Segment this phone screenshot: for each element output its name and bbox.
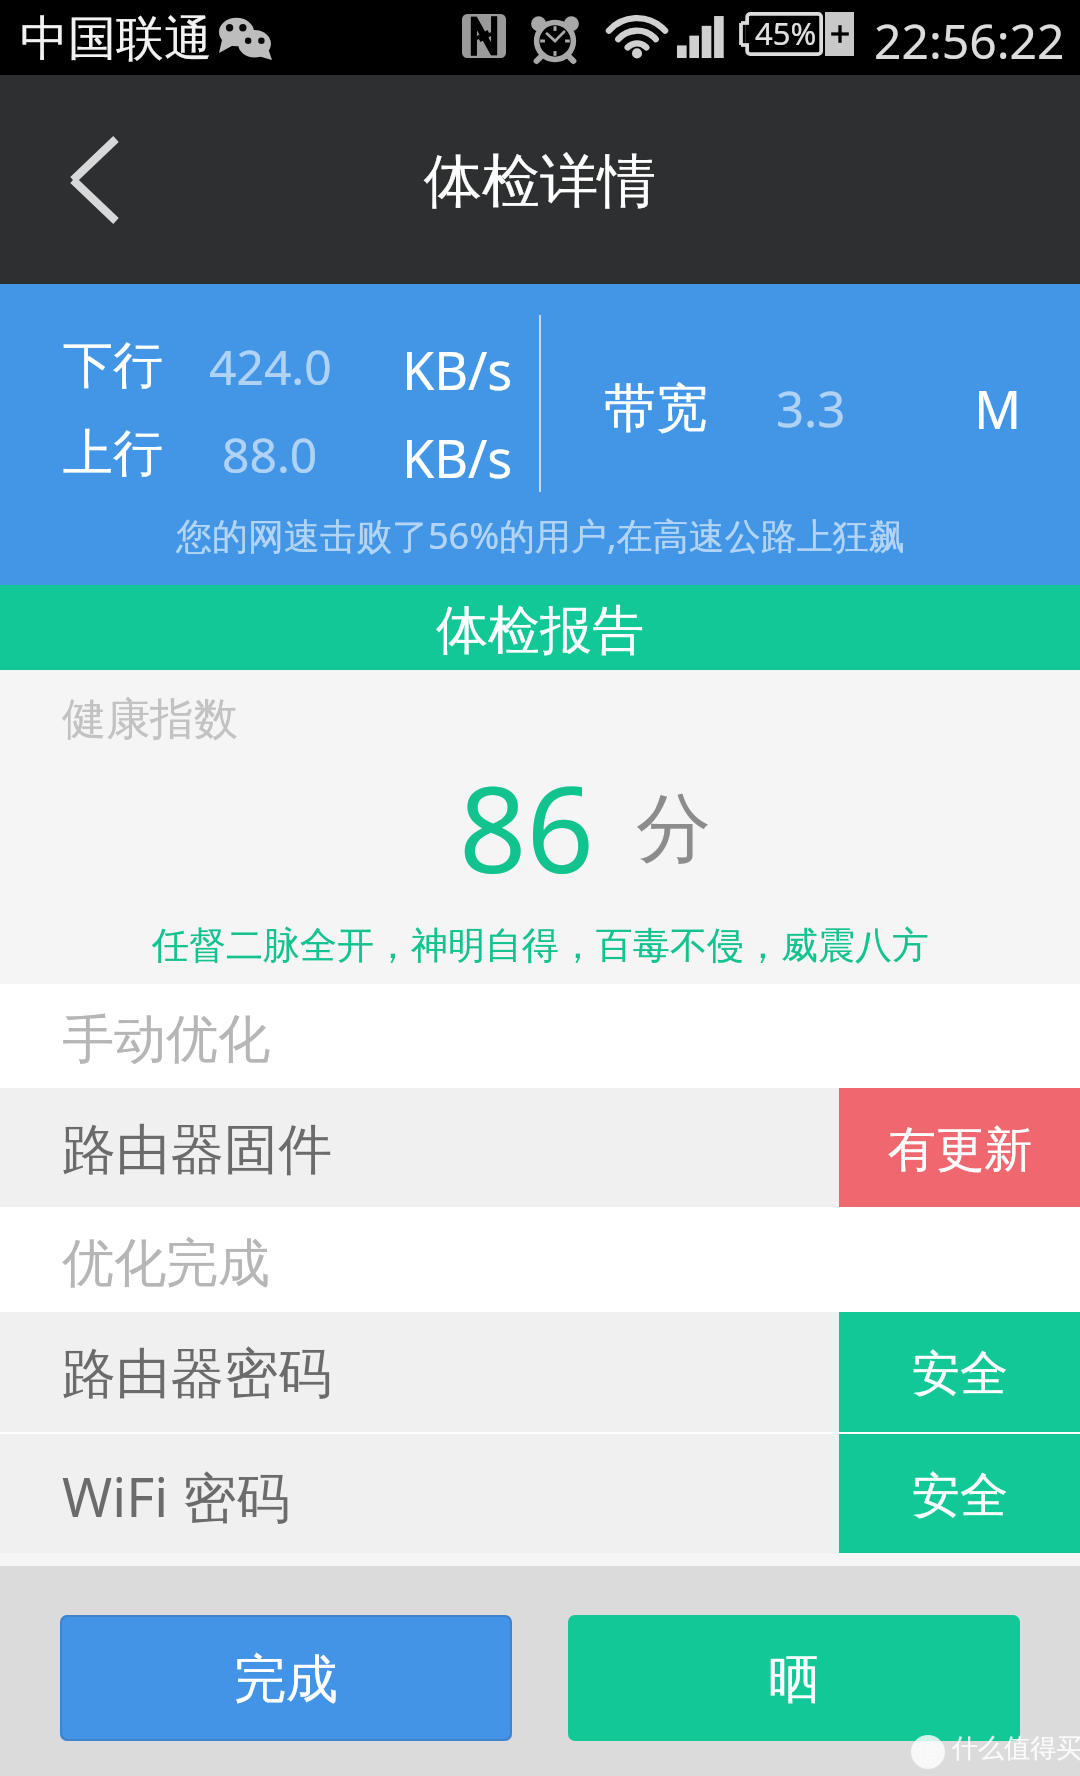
staticText: 上行 bbox=[63, 422, 163, 485]
staticText: 您的网速击败了56%的用户,在高速公路上狂飙 bbox=[176, 511, 905, 560]
staticText: 手动优化 bbox=[62, 1007, 270, 1073]
staticText: 安全 bbox=[912, 1466, 1008, 1526]
staticText: 健康指数 bbox=[62, 692, 238, 747]
staticText: WiFi 密码 bbox=[62, 1459, 291, 1533]
staticText: 22:56:22 bbox=[874, 8, 1065, 73]
staticText: 88.0 bbox=[222, 422, 318, 487]
staticText: 下行 bbox=[63, 334, 163, 397]
staticText: 优化完成 bbox=[62, 1231, 270, 1297]
staticText: 有更新 bbox=[888, 1120, 1032, 1180]
staticText: KB/s bbox=[402, 422, 513, 493]
button[interactable]: Back bbox=[0, 75, 190, 284]
staticText: KB/s bbox=[402, 334, 513, 405]
staticText: M bbox=[974, 373, 1022, 444]
button[interactable]: 路由器密码 bbox=[0, 1312, 1080, 1432]
button[interactable]: WiFi 密码 bbox=[0, 1434, 1080, 1553]
staticText: 86 bbox=[459, 747, 594, 908]
button[interactable]: 路由器固件 bbox=[0, 1088, 1080, 1207]
staticText: 3.3 bbox=[776, 375, 846, 442]
staticText: 完成 bbox=[234, 1647, 338, 1713]
staticText: 什么值得买 bbox=[952, 1732, 1080, 1765]
staticText: 体检详情 bbox=[424, 145, 656, 218]
staticText: 路由器固件 bbox=[62, 1116, 332, 1184]
staticText: 任督二脉全开，神明自得，百毒不侵，威震八方 bbox=[152, 922, 929, 969]
staticText: 值 bbox=[916, 1737, 940, 1767]
button[interactable]: 完成 bbox=[62, 1617, 510, 1739]
staticText: 路由器密码 bbox=[62, 1340, 332, 1408]
staticText: 安全 bbox=[912, 1344, 1008, 1404]
staticText: 体检报告 bbox=[436, 598, 644, 664]
staticText: 中国联通 bbox=[20, 9, 212, 69]
staticText: 带宽 bbox=[604, 376, 708, 442]
staticText: 晒 bbox=[768, 1647, 820, 1713]
staticText: 45% bbox=[755, 12, 817, 54]
button[interactable]: 晒 bbox=[568, 1615, 1020, 1741]
staticText: 424.0 bbox=[209, 334, 332, 399]
staticText: 分 bbox=[636, 782, 711, 876]
